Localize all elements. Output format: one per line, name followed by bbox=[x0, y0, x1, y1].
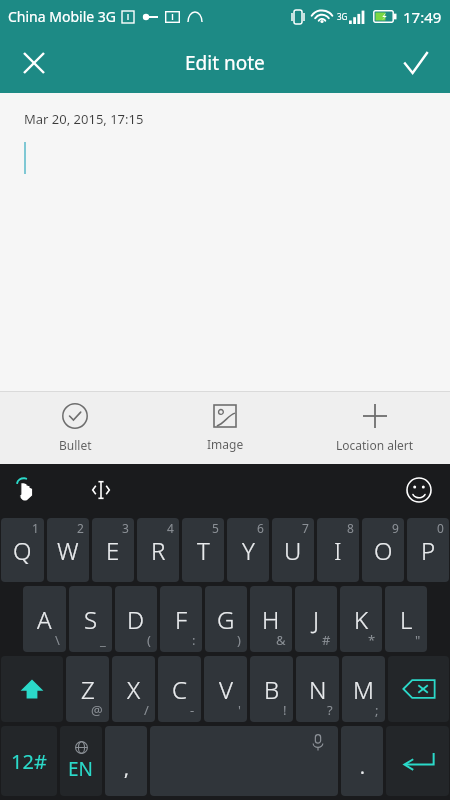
button[interactable]: Enter bbox=[386, 726, 449, 796]
staticText: # bbox=[322, 631, 331, 649]
button[interactable]: C bbox=[158, 656, 201, 722]
staticText: 1 bbox=[32, 520, 39, 536]
staticText: 4 bbox=[167, 520, 174, 536]
staticText: O bbox=[374, 534, 393, 567]
button[interactable]: U bbox=[272, 518, 314, 582]
staticText: , bbox=[124, 757, 129, 782]
staticText: B bbox=[264, 673, 280, 706]
button[interactable]: Period bbox=[341, 726, 383, 796]
staticText: P bbox=[421, 534, 436, 567]
staticText: X bbox=[127, 673, 141, 706]
staticText: R bbox=[151, 534, 166, 567]
button[interactable]: D bbox=[115, 586, 157, 652]
staticText: U bbox=[284, 534, 302, 567]
staticText: 12# bbox=[11, 748, 47, 775]
staticText: Mar 20, 2015, 17:15 bbox=[24, 110, 144, 128]
staticText: \ bbox=[55, 631, 60, 649]
button[interactable]: J bbox=[295, 586, 337, 652]
staticText: Q bbox=[13, 534, 32, 567]
button[interactable]: N bbox=[296, 656, 339, 722]
staticText: ? bbox=[327, 701, 333, 719]
button[interactable]: Language EN bbox=[60, 726, 102, 796]
staticText: N bbox=[309, 673, 327, 706]
staticText: M bbox=[353, 673, 374, 706]
button[interactable]: X bbox=[112, 656, 155, 722]
button[interactable]: A bbox=[23, 586, 66, 652]
button[interactable]: Location alert bbox=[300, 392, 450, 464]
staticText: A bbox=[37, 603, 52, 636]
staticText: 2 bbox=[77, 520, 84, 536]
staticText: 17:49 bbox=[403, 7, 442, 27]
button[interactable]: Comma bbox=[105, 726, 147, 796]
staticText: F bbox=[175, 603, 188, 636]
staticText: G bbox=[217, 603, 235, 636]
staticText: ! bbox=[283, 701, 287, 719]
staticText: 8 bbox=[347, 520, 354, 536]
staticText: Bullet bbox=[59, 437, 92, 453]
staticText: 3G bbox=[337, 11, 348, 22]
staticText: Y bbox=[242, 534, 255, 567]
button[interactable]: Space bbox=[150, 726, 338, 796]
button[interactable]: V bbox=[204, 656, 247, 722]
staticText: E bbox=[106, 534, 120, 567]
staticText: @ bbox=[91, 701, 103, 719]
staticText: I bbox=[334, 534, 342, 567]
button[interactable]: L bbox=[385, 586, 427, 652]
button[interactable]: P bbox=[407, 518, 449, 582]
button[interactable]: Bullet bbox=[0, 392, 150, 464]
button[interactable]: Close bbox=[10, 39, 58, 87]
button[interactable]: T bbox=[182, 518, 224, 582]
staticText: ' bbox=[238, 701, 241, 719]
staticText: Location alert bbox=[336, 437, 414, 453]
button[interactable]: E bbox=[92, 518, 134, 582]
button[interactable]: G bbox=[205, 586, 247, 652]
staticText: 5 bbox=[212, 520, 219, 536]
button[interactable]: Image bbox=[150, 392, 300, 464]
button[interactable]: R bbox=[137, 518, 179, 582]
button[interactable]: Y bbox=[227, 518, 269, 582]
staticText: 3 bbox=[122, 520, 129, 536]
staticText: 7 bbox=[302, 520, 309, 536]
button[interactable]: Numbers and symbols bbox=[1, 726, 57, 796]
button[interactable]: F bbox=[160, 586, 202, 652]
button[interactable]: Emoji bbox=[396, 467, 442, 513]
staticText: J bbox=[313, 603, 320, 636]
staticText: D bbox=[127, 603, 145, 636]
staticText: W bbox=[57, 534, 79, 567]
button[interactable]: Z bbox=[66, 656, 109, 722]
staticText: T bbox=[197, 534, 210, 567]
button[interactable]: Move cursor bbox=[78, 467, 124, 513]
staticText: & bbox=[276, 631, 286, 649]
staticText: - bbox=[190, 701, 195, 719]
button[interactable]: Backspace bbox=[388, 656, 449, 722]
staticText: EN bbox=[68, 756, 94, 782]
button[interactable]: M bbox=[342, 656, 385, 722]
button[interactable]: O bbox=[362, 518, 404, 582]
button[interactable]: Q bbox=[1, 518, 44, 582]
button[interactable]: K bbox=[340, 586, 382, 652]
button[interactable]: I bbox=[317, 518, 359, 582]
staticText: C bbox=[172, 673, 187, 706]
staticText: ; bbox=[375, 701, 379, 719]
button[interactable]: Save bbox=[392, 39, 440, 87]
button[interactable]: W bbox=[47, 518, 89, 582]
button[interactable]: Shift bbox=[1, 656, 63, 722]
staticText: Image bbox=[207, 436, 244, 452]
staticText: / bbox=[144, 701, 149, 719]
staticText: " bbox=[415, 631, 421, 649]
staticText: Edit note bbox=[185, 50, 265, 76]
button[interactable]: B bbox=[250, 656, 293, 722]
staticText: * bbox=[368, 631, 376, 649]
staticText: . bbox=[360, 755, 365, 780]
staticText: : bbox=[192, 631, 196, 649]
button[interactable]: S bbox=[69, 586, 112, 652]
staticText: S bbox=[84, 603, 98, 636]
staticText: H bbox=[262, 603, 280, 636]
staticText: ( bbox=[147, 631, 151, 649]
staticText: _ bbox=[100, 631, 106, 649]
button[interactable]: H bbox=[250, 586, 292, 652]
staticText: 0 bbox=[437, 520, 444, 536]
button[interactable]: Handwriting bbox=[4, 467, 50, 513]
staticText: V bbox=[219, 673, 233, 706]
staticText: ) bbox=[237, 631, 241, 649]
